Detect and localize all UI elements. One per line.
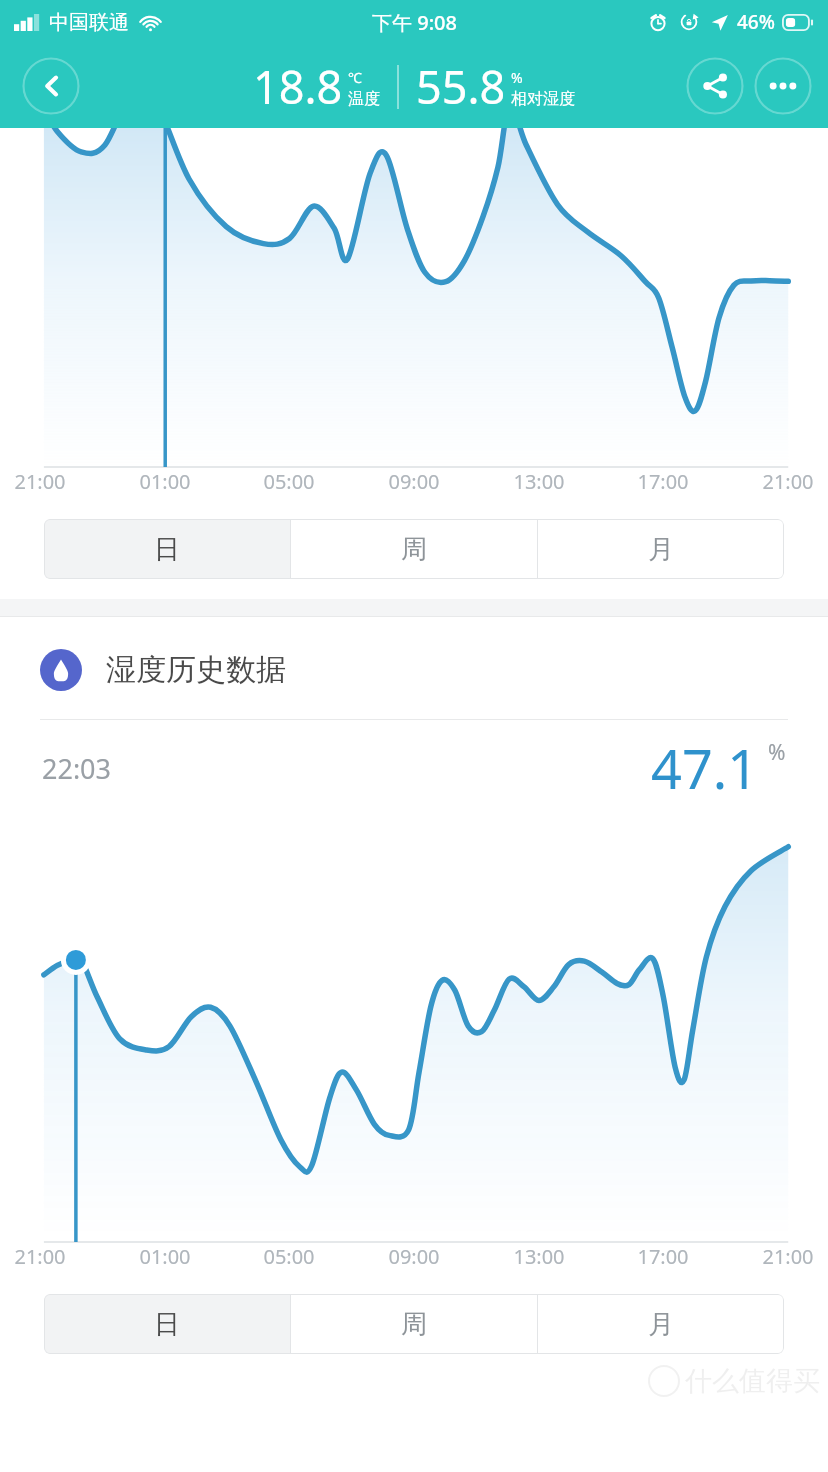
staticText: 月 xyxy=(648,533,674,566)
staticText: 下午 9:08 xyxy=(372,9,457,36)
staticText: 17:00 xyxy=(637,468,689,495)
staticText: 46% xyxy=(737,9,775,35)
staticText: 22:03 xyxy=(42,750,112,787)
staticText: 日 xyxy=(154,533,180,566)
staticText: 周 xyxy=(401,533,427,566)
staticText: % xyxy=(768,738,786,767)
staticText: ℃ xyxy=(348,68,362,87)
button[interactable]: 月 xyxy=(538,519,784,579)
staticText: 21:00 xyxy=(14,468,66,495)
staticText: 湿度历史数据 xyxy=(106,651,286,689)
staticText: 月 xyxy=(648,1308,674,1341)
staticText: 什么值得买 xyxy=(685,1364,820,1398)
staticText: 09:00 xyxy=(388,468,440,495)
staticText: 周 xyxy=(401,1308,427,1341)
staticText: 05:00 xyxy=(263,468,315,495)
staticText: 21:00 xyxy=(762,1243,814,1270)
staticText: 18.8 xyxy=(253,56,343,117)
staticText: 13:00 xyxy=(513,1243,565,1270)
staticText: 09:00 xyxy=(388,1243,440,1270)
button[interactable]: 日 xyxy=(44,1294,290,1354)
staticText: 17:00 xyxy=(637,1243,689,1270)
staticText: 温度 xyxy=(348,89,380,109)
button[interactable]: 周 xyxy=(291,1294,537,1354)
button[interactable]: 日 xyxy=(44,519,290,579)
staticText: 55.8 xyxy=(416,56,506,117)
staticText: 21:00 xyxy=(762,468,814,495)
button[interactable]: 月 xyxy=(538,1294,784,1354)
staticText: 01:00 xyxy=(139,1243,191,1270)
staticText: 相对湿度 xyxy=(511,89,575,109)
staticText: 01:00 xyxy=(139,468,191,495)
staticText: 47.1 xyxy=(651,731,759,805)
staticText: 05:00 xyxy=(263,1243,315,1270)
staticText: 日 xyxy=(154,1308,180,1341)
button[interactable]: Back xyxy=(22,57,80,115)
button[interactable]: 湿度历史数据 xyxy=(40,649,788,691)
staticText: 21:00 xyxy=(14,1243,66,1270)
staticText: 中国联通 xyxy=(49,10,129,35)
staticText: % xyxy=(511,68,523,87)
staticText: 13:00 xyxy=(513,468,565,495)
button[interactable]: More options xyxy=(754,57,812,115)
button[interactable]: 周 xyxy=(291,519,537,579)
button[interactable]: Share xyxy=(686,57,744,115)
